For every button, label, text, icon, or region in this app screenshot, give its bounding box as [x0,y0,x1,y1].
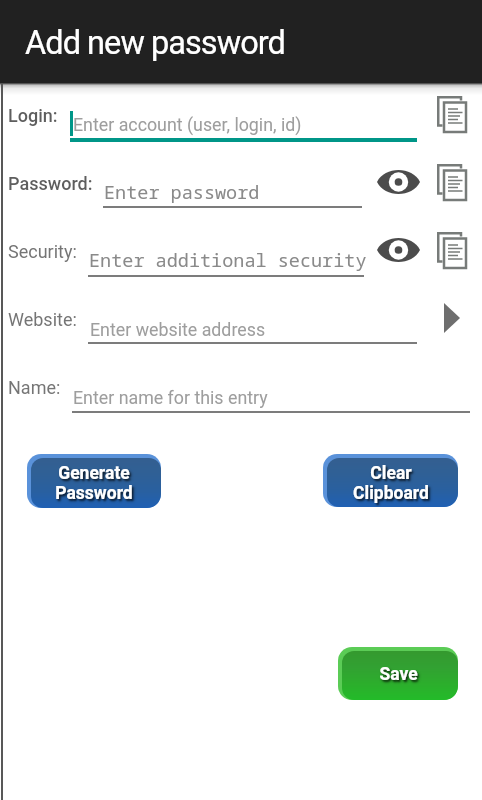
button[interactable]: Show password [377,238,420,262]
staticText: Enter name for this entry [73,387,268,408]
staticText: Generate Password [55,463,133,503]
button[interactable]: Copy to clipboard [437,164,468,201]
staticText: Enter account (user, login, id) [73,114,302,135]
staticText: Enter website address [90,319,266,340]
staticText: Login: [8,105,58,126]
button[interactable]: Clear Clipboard [323,454,458,507]
staticText: Clear Clipboard [353,463,429,503]
button[interactable]: Copy to clipboard [437,232,468,269]
staticText: Save [379,664,418,685]
staticText: Password: [8,173,93,194]
button[interactable]: Add new password [0,0,482,83]
button[interactable]: Open website [444,303,460,333]
button[interactable]: Save [338,647,458,700]
staticText: Website: [8,309,77,330]
staticText: Enter password [104,179,260,204]
staticText: Add new password [25,24,285,62]
button[interactable]: Generate Password [27,454,161,508]
staticText: Enter additional security [89,247,367,272]
staticText: Name: [8,377,61,398]
button[interactable]: Show password [377,170,420,194]
staticText: Security: [8,241,77,262]
button[interactable]: Copy to clipboard [437,96,468,133]
